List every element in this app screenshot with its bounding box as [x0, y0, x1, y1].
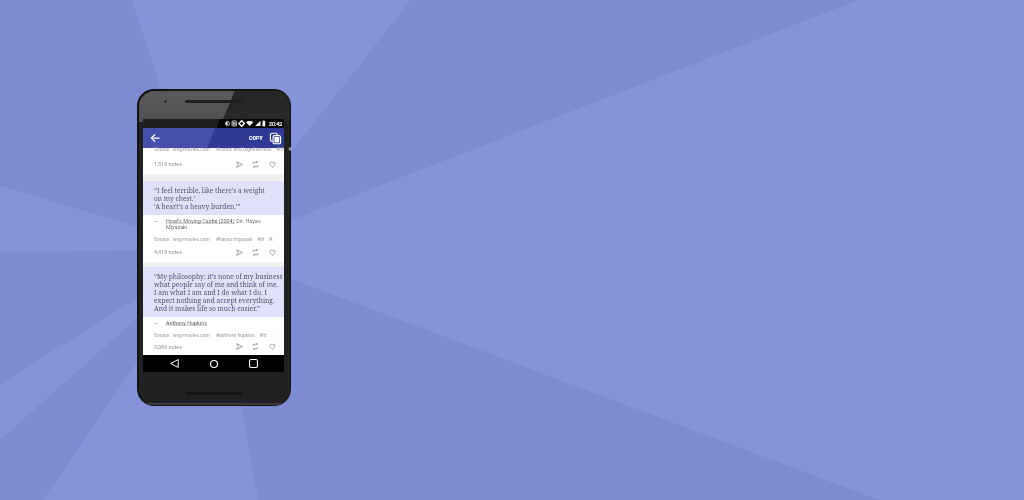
button[interactable]: Back — [148, 131, 162, 145]
button[interactable]: Share — [233, 246, 246, 259]
staticText: COPY — [249, 135, 263, 141]
staticText: 20:42 — [269, 121, 283, 127]
button[interactable]: Back — [166, 355, 183, 372]
button[interactable]: Reblog — [249, 158, 262, 171]
staticText: — — [154, 320, 159, 326]
staticText: Dir. Hayao — [235, 218, 261, 224]
button[interactable]: Like — [266, 158, 279, 171]
button[interactable]: Anthony Hopkins — [166, 320, 207, 326]
button[interactable]: COPY — [247, 131, 265, 145]
staticText: 1,516 notes — [154, 161, 182, 167]
button[interactable]: Share — [233, 340, 246, 353]
staticText: “My philosophy: it’s none of my business… — [154, 272, 283, 313]
button[interactable]: Reblog — [249, 246, 262, 259]
button[interactable]: Share — [233, 158, 246, 171]
staticText: Source : wng-movies.com #hayao miyazaki … — [154, 236, 274, 242]
button[interactable]: Reblog — [249, 340, 262, 353]
staticText: 3,086 notes — [154, 344, 182, 350]
staticText: 4,418 notes — [154, 249, 182, 255]
button[interactable]: Howl’s Moving Castle (2004) — [166, 218, 235, 224]
button[interactable]: Home — [205, 355, 222, 372]
staticText: Source : wng-movies.com #anthony hopkins… — [154, 332, 273, 338]
button[interactable]: Copy all — [269, 132, 282, 145]
staticText: Miyazaki — [166, 224, 188, 230]
staticText: Source : wng-movies.com #comic and toget… — [154, 146, 291, 152]
staticText: — — [154, 218, 159, 224]
staticText: “I feel terrible, like there’s a weight … — [154, 186, 265, 211]
button[interactable]: Like — [266, 246, 279, 259]
button[interactable]: Like — [266, 340, 279, 353]
button[interactable]: Recents — [245, 355, 262, 372]
